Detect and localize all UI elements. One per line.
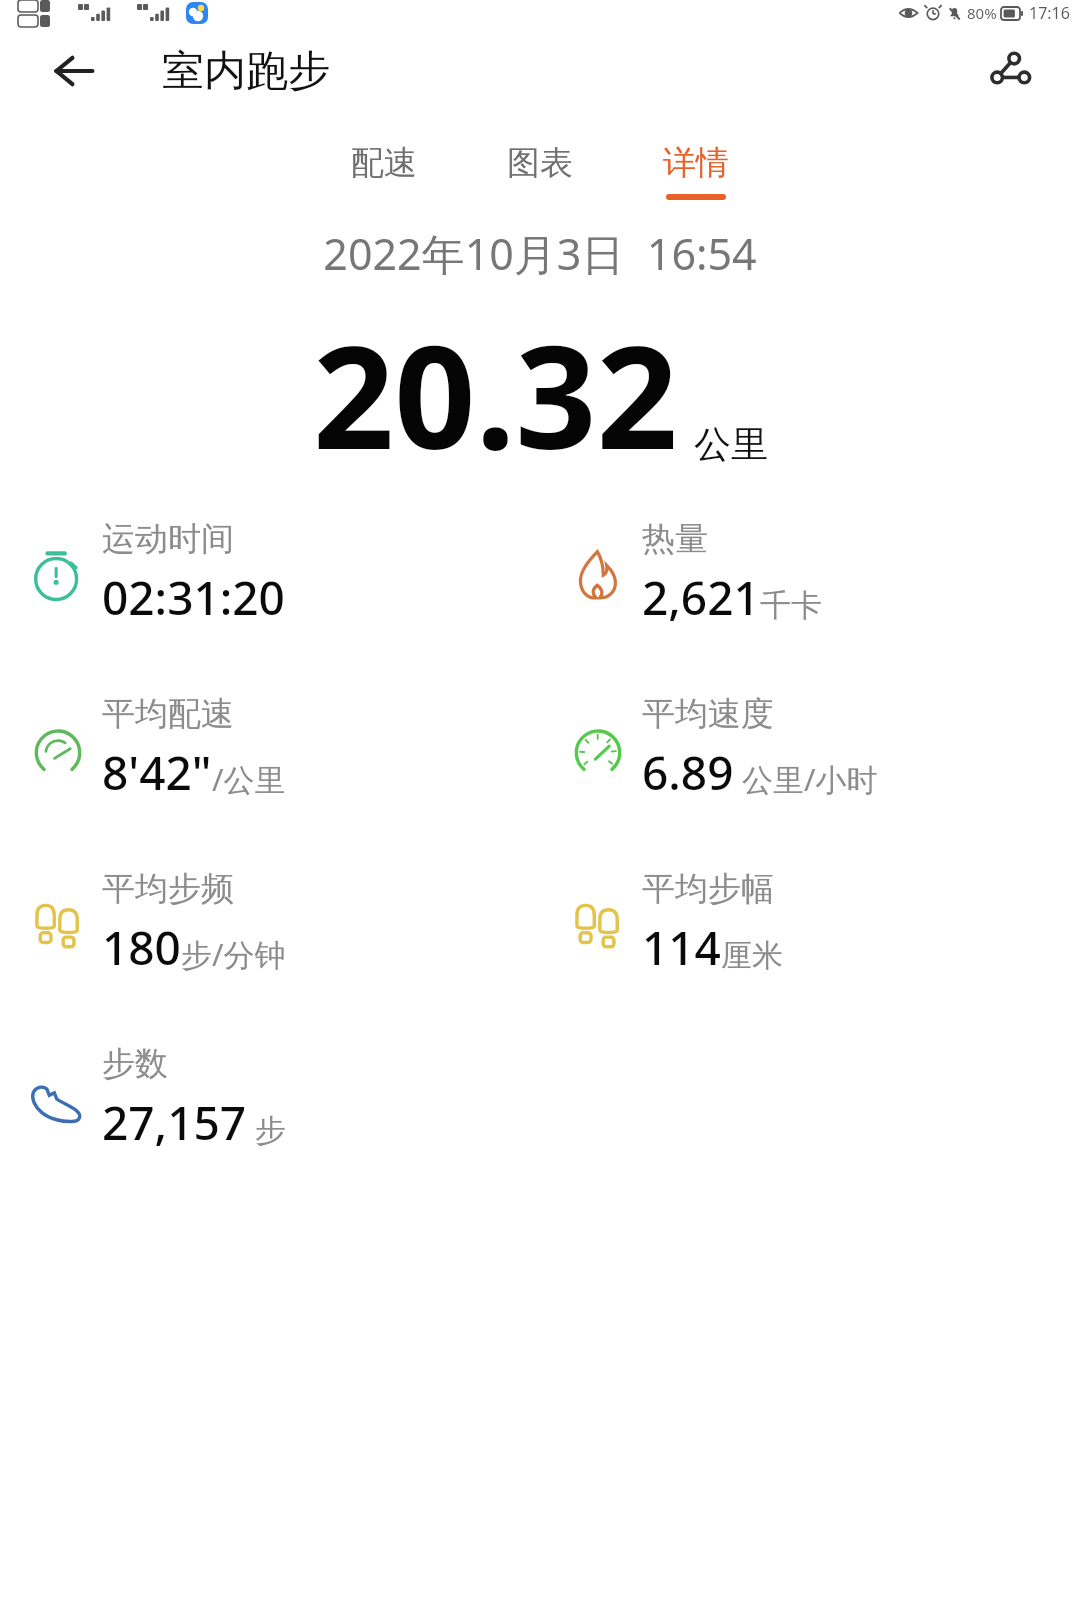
staticText: 2022年10月3日 16:54 — [0, 224, 1080, 283]
staticText: 公里 — [694, 421, 768, 468]
staticText: 2,621 — [642, 566, 760, 629]
staticText: 平均步幅 — [642, 868, 774, 910]
staticText: 180 — [102, 916, 181, 979]
button[interactable]: Back — [48, 45, 100, 97]
staticText: 17:16 — [1029, 2, 1070, 24]
staticText: 厘米 — [721, 936, 783, 975]
staticText: 6.89 — [642, 741, 734, 804]
staticText: 图表 — [507, 142, 573, 184]
staticText: 热量 — [642, 518, 708, 560]
staticText: 02:31:20 — [102, 566, 285, 629]
button[interactable]: 平均步频 — [0, 868, 540, 979]
button[interactable]: 图表 — [503, 142, 577, 200]
staticText: 114 — [642, 916, 721, 979]
button[interactable]: 平均步幅 — [540, 868, 1080, 979]
button[interactable]: 详情 — [659, 142, 733, 200]
button[interactable]: Share — [972, 38, 1038, 104]
staticText: 8'42" — [102, 741, 212, 804]
staticText: 27,157 — [102, 1091, 247, 1154]
staticText: 运动时间 — [102, 518, 234, 560]
staticText: 80% — [967, 3, 997, 23]
button[interactable]: 步数 — [0, 1043, 540, 1154]
staticText: 平均步频 — [102, 868, 234, 910]
staticText: 平均配速 — [102, 693, 234, 735]
staticText: 20.32 — [313, 297, 678, 490]
staticText: 室内跑步 — [162, 45, 330, 98]
staticText: /公里 — [212, 758, 286, 800]
button[interactable]: 热量 — [540, 518, 1080, 629]
button[interactable]: 平均配速 — [0, 693, 540, 804]
staticText: 配速 — [351, 142, 417, 184]
staticText: 公里/小时 — [734, 758, 878, 800]
staticText: 千卡 — [760, 586, 822, 625]
staticText: 平均速度 — [642, 693, 774, 735]
button[interactable]: 平均速度 — [540, 693, 1080, 804]
button[interactable]: 配速 — [347, 142, 421, 200]
staticText: 步/分钟 — [181, 933, 286, 975]
staticText: 详情 — [663, 142, 729, 184]
staticText: 步 — [247, 1108, 287, 1150]
button[interactable]: 运动时间 — [0, 518, 540, 629]
staticText: 步数 — [102, 1043, 168, 1085]
